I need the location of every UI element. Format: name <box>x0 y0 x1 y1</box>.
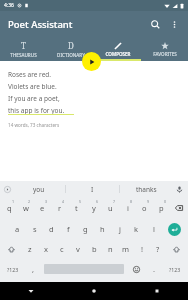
button[interactable]: o <box>136 197 153 219</box>
button[interactable]: . <box>146 259 162 279</box>
staticText: THESAURUS <box>10 52 37 58</box>
staticText: w <box>23 203 29 213</box>
button[interactable]: r <box>51 197 68 219</box>
staticText: you <box>33 185 45 194</box>
staticText: 3 <box>45 199 48 204</box>
button[interactable]: l <box>145 219 162 239</box>
button[interactable]: ! <box>134 239 150 259</box>
staticText: u <box>108 203 113 213</box>
button[interactable]: Home <box>62 282 125 300</box>
button[interactable]: d <box>43 219 60 239</box>
staticText: 1 <box>12 199 15 204</box>
staticText: I <box>91 185 94 194</box>
staticText: m <box>122 244 130 254</box>
staticText: x <box>44 244 48 254</box>
staticText: If you are a poet, <box>8 94 60 103</box>
staticText: T <box>21 40 26 51</box>
staticText: n <box>108 244 113 254</box>
button[interactable]: x <box>38 239 54 259</box>
staticText: 5 <box>79 199 82 204</box>
button[interactable]: Shift <box>166 239 187 259</box>
staticText: h <box>100 224 105 234</box>
staticText: l <box>153 224 155 234</box>
staticText: 8 <box>130 199 133 204</box>
staticText: r <box>58 203 62 213</box>
button[interactable]: i <box>119 197 136 219</box>
button[interactable]: Expand suggestions <box>2 184 12 194</box>
staticText: 0 <box>164 199 167 204</box>
button[interactable]: v <box>70 239 86 259</box>
staticText: Violets are blue. <box>8 82 57 91</box>
staticText: t <box>75 203 78 213</box>
button[interactable]: Play <box>82 52 101 71</box>
staticText: Poet Assistant <box>8 18 73 31</box>
staticText: z <box>28 244 32 254</box>
staticText: thanks <box>136 185 157 194</box>
button[interactable]: q <box>1 197 17 219</box>
button[interactable]: ?123 <box>162 259 187 279</box>
button[interactable]: m <box>118 239 134 259</box>
staticText: c <box>60 244 64 254</box>
button[interactable]: Enter <box>168 223 181 236</box>
staticText: . <box>153 264 156 274</box>
staticText: o <box>142 203 147 213</box>
button[interactable]: z <box>22 239 38 259</box>
staticText: e <box>40 203 45 213</box>
staticText: f <box>67 224 70 234</box>
staticText: i <box>127 203 129 213</box>
button[interactable]: e <box>34 197 51 219</box>
staticText: 9 <box>147 199 150 204</box>
button[interactable]: D <box>47 37 94 61</box>
staticText: j <box>119 224 121 234</box>
button[interactable]: you <box>12 181 65 197</box>
staticText: this app is for you. <box>8 106 65 115</box>
button[interactable]: Recents <box>125 282 188 300</box>
staticText: D <box>68 40 74 51</box>
button[interactable]: I <box>66 181 119 197</box>
staticText: 4 <box>62 199 65 204</box>
staticText: Roses are red. <box>8 70 52 79</box>
button[interactable]: a <box>9 219 26 239</box>
button[interactable]: s <box>26 219 43 239</box>
staticText: s <box>33 224 37 234</box>
staticText: 4:36 <box>4 2 14 9</box>
staticText: , <box>32 264 35 274</box>
button[interactable]: b <box>86 239 102 259</box>
button[interactable]: ?123 <box>1 259 25 279</box>
button[interactable]: j <box>111 219 128 239</box>
button[interactable]: T <box>0 37 47 61</box>
button[interactable]: y <box>85 197 102 219</box>
button[interactable]: u <box>102 197 119 219</box>
button[interactable]: f <box>60 219 77 239</box>
staticText: 2 <box>28 199 31 204</box>
button[interactable]: Search <box>145 14 165 34</box>
button[interactable]: n <box>102 239 118 259</box>
staticText: ?123 <box>7 266 19 273</box>
button[interactable]: w <box>17 197 34 219</box>
button[interactable]: Backspace <box>171 198 186 218</box>
staticText: a <box>15 224 20 234</box>
button[interactable]: p <box>153 197 170 219</box>
button[interactable]: ? <box>150 239 166 259</box>
button[interactable]: COMPOSER <box>94 37 141 61</box>
button[interactable]: Back <box>0 282 62 300</box>
button[interactable]: Voice input <box>173 183 186 196</box>
button[interactable]: Shift <box>1 239 22 259</box>
staticText: ?123 <box>169 266 181 273</box>
staticText: p <box>159 203 164 213</box>
staticText: 7 <box>113 199 116 204</box>
staticText: 14 words, 73 characters <box>8 122 60 128</box>
button[interactable]: c <box>54 239 70 259</box>
button[interactable]: , <box>25 259 41 279</box>
button[interactable]: thanks <box>120 181 173 197</box>
button[interactable]: t <box>68 197 85 219</box>
button[interactable]: FAVORITES <box>141 37 188 61</box>
button[interactable]: g <box>77 219 94 239</box>
staticText: FAVORITES <box>153 51 177 57</box>
button[interactable]: k <box>128 219 145 239</box>
button[interactable]: Emoji <box>127 259 146 279</box>
staticText: b <box>92 244 97 254</box>
button[interactable]: h <box>94 219 111 239</box>
button[interactable]: More options <box>165 15 183 33</box>
